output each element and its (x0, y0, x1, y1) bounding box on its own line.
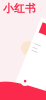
staticText: 小红书 (3, 2, 36, 15)
